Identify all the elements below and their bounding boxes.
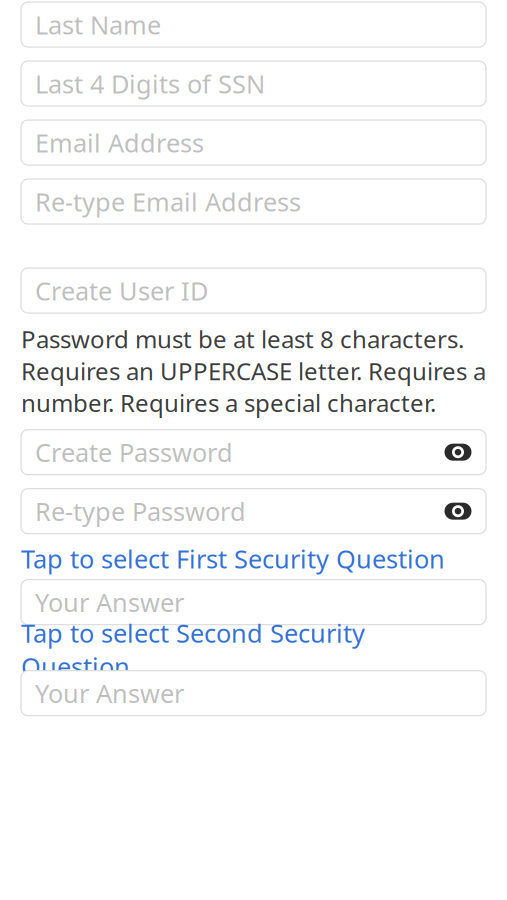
button[interactable]: Re-type Password <box>21 489 486 534</box>
button[interactable]: Re-type Email Address <box>21 179 486 224</box>
button[interactable]: Tap to select First Security Question <box>21 546 486 572</box>
button[interactable]: Create User ID <box>21 268 486 313</box>
staticText: Your Answer <box>35 676 184 710</box>
staticText: Password must be at least 8 characters. … <box>21 323 486 419</box>
staticText: Re-type Password <box>35 494 246 528</box>
staticText: Last Name <box>35 8 161 41</box>
button[interactable]: Your Answer <box>21 580 486 625</box>
staticText: Email Address <box>35 126 204 159</box>
button[interactable]: Create Password <box>21 430 486 475</box>
button[interactable]: Your Answer <box>21 671 486 716</box>
staticText: Create User ID <box>35 274 208 307</box>
button[interactable]: Email Address <box>21 120 486 165</box>
button[interactable]: Last 4 Digits of SSN <box>21 61 486 106</box>
button[interactable]: Tap to select Second Security Question <box>21 637 486 663</box>
button[interactable]: Last Name <box>21 2 486 47</box>
staticText: Last 4 Digits of SSN <box>35 67 265 100</box>
staticText: Re-type Email Address <box>35 185 301 218</box>
staticText: Your Answer <box>35 585 184 619</box>
staticText: Tap to select Second Security Question <box>21 616 365 683</box>
staticText: Tap to select First Security Question <box>21 542 445 575</box>
staticText: Create Password <box>35 435 233 469</box>
